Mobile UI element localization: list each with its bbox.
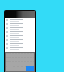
button[interactable] — [5, 38, 35, 42]
button[interactable] — [5, 22, 35, 26]
button[interactable] — [6, 57, 8, 61]
button[interactable] — [26, 66, 34, 71]
button[interactable] — [5, 46, 35, 50]
button[interactable] — [8, 57, 10, 61]
button[interactable] — [6, 53, 8, 57]
button[interactable] — [5, 11, 35, 18]
button[interactable] — [5, 18, 35, 22]
button[interactable] — [5, 34, 35, 38]
button[interactable] — [5, 26, 35, 30]
button[interactable] — [8, 53, 10, 57]
button[interactable] — [5, 42, 35, 46]
button[interactable] — [5, 30, 35, 34]
